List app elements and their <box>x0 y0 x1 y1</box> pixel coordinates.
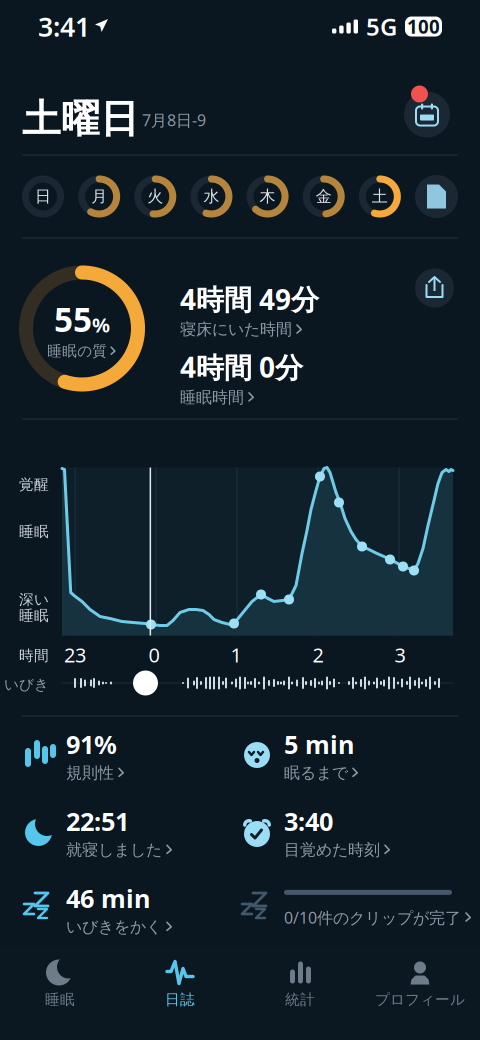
staticText: 日誌 <box>165 990 195 1008</box>
button[interactable]: 統計 <box>240 947 360 1040</box>
staticText: 睡眠 <box>19 522 49 540</box>
button[interactable]: 睡眠 <box>0 947 120 1040</box>
staticText: 3:41 <box>38 9 90 44</box>
staticText: 土 <box>372 187 388 206</box>
staticText: 1 <box>230 641 241 668</box>
button[interactable]: 日誌 <box>120 947 240 1040</box>
staticText: いびきをかく <box>66 917 162 937</box>
button[interactable]: 3:40 <box>240 793 458 870</box>
staticText: 睡眠時間 <box>180 387 244 407</box>
staticText: 目覚めた時刻 <box>284 840 380 860</box>
button[interactable]: 91% <box>22 716 240 793</box>
staticText: 23 <box>64 641 86 668</box>
staticText: 3:40 <box>284 804 333 838</box>
button[interactable]: 22:51 <box>22 793 240 870</box>
staticText: 55 <box>54 297 92 341</box>
staticText: 0/10件のクリップが完了 <box>284 907 461 928</box>
staticText: 7月8日-9 <box>142 109 206 131</box>
staticText: 時間 <box>19 646 49 664</box>
staticText: 0 <box>148 641 159 668</box>
button[interactable]: Notes <box>415 175 458 218</box>
staticText: 眠るまで <box>284 763 348 783</box>
staticText: 22:51 <box>66 804 129 838</box>
staticText: 水 <box>203 187 219 206</box>
staticText: 覚醒 <box>19 475 49 493</box>
staticText: プロフィール <box>375 990 465 1008</box>
button[interactable]: 55 <box>17 263 147 393</box>
staticText: 金 <box>316 187 332 206</box>
staticText: 5G <box>366 11 397 42</box>
button[interactable]: プロフィール <box>360 947 480 1040</box>
staticText: 睡眠の質 <box>47 342 107 360</box>
button[interactable]: Calendar <box>404 85 456 141</box>
staticText: 4時間 0分 <box>180 348 303 385</box>
button[interactable]: 46 min <box>22 870 240 947</box>
staticText: 火 <box>147 187 163 206</box>
button[interactable]: 0/10件のクリップが完了 <box>240 870 458 947</box>
staticText: 睡眠 <box>19 606 49 624</box>
staticText: % <box>92 312 110 338</box>
staticText: 睡眠 <box>45 990 75 1008</box>
staticText: 3 <box>394 641 405 668</box>
staticText: 月 <box>91 187 107 206</box>
staticText: 4時間 49分 <box>180 280 319 318</box>
staticText: 日 <box>35 187 51 206</box>
staticText: 統計 <box>285 990 315 1008</box>
staticText: いびき <box>4 675 49 693</box>
staticText: 91% <box>66 727 117 761</box>
staticText: 土曜日 <box>22 95 139 143</box>
staticText: 5 min <box>284 727 354 761</box>
staticText: 46 min <box>66 881 150 915</box>
staticText: 2 <box>312 641 323 668</box>
button[interactable]: Share <box>415 268 454 307</box>
staticText: 木 <box>260 187 276 206</box>
staticText: 100 <box>407 14 440 39</box>
staticText: 規則性 <box>66 763 114 783</box>
staticText: 深い <box>19 590 49 608</box>
staticText: 寝床にいた時間 <box>180 320 292 339</box>
button[interactable]: 5 min <box>240 716 458 793</box>
staticText: 就寝しました <box>66 840 162 860</box>
